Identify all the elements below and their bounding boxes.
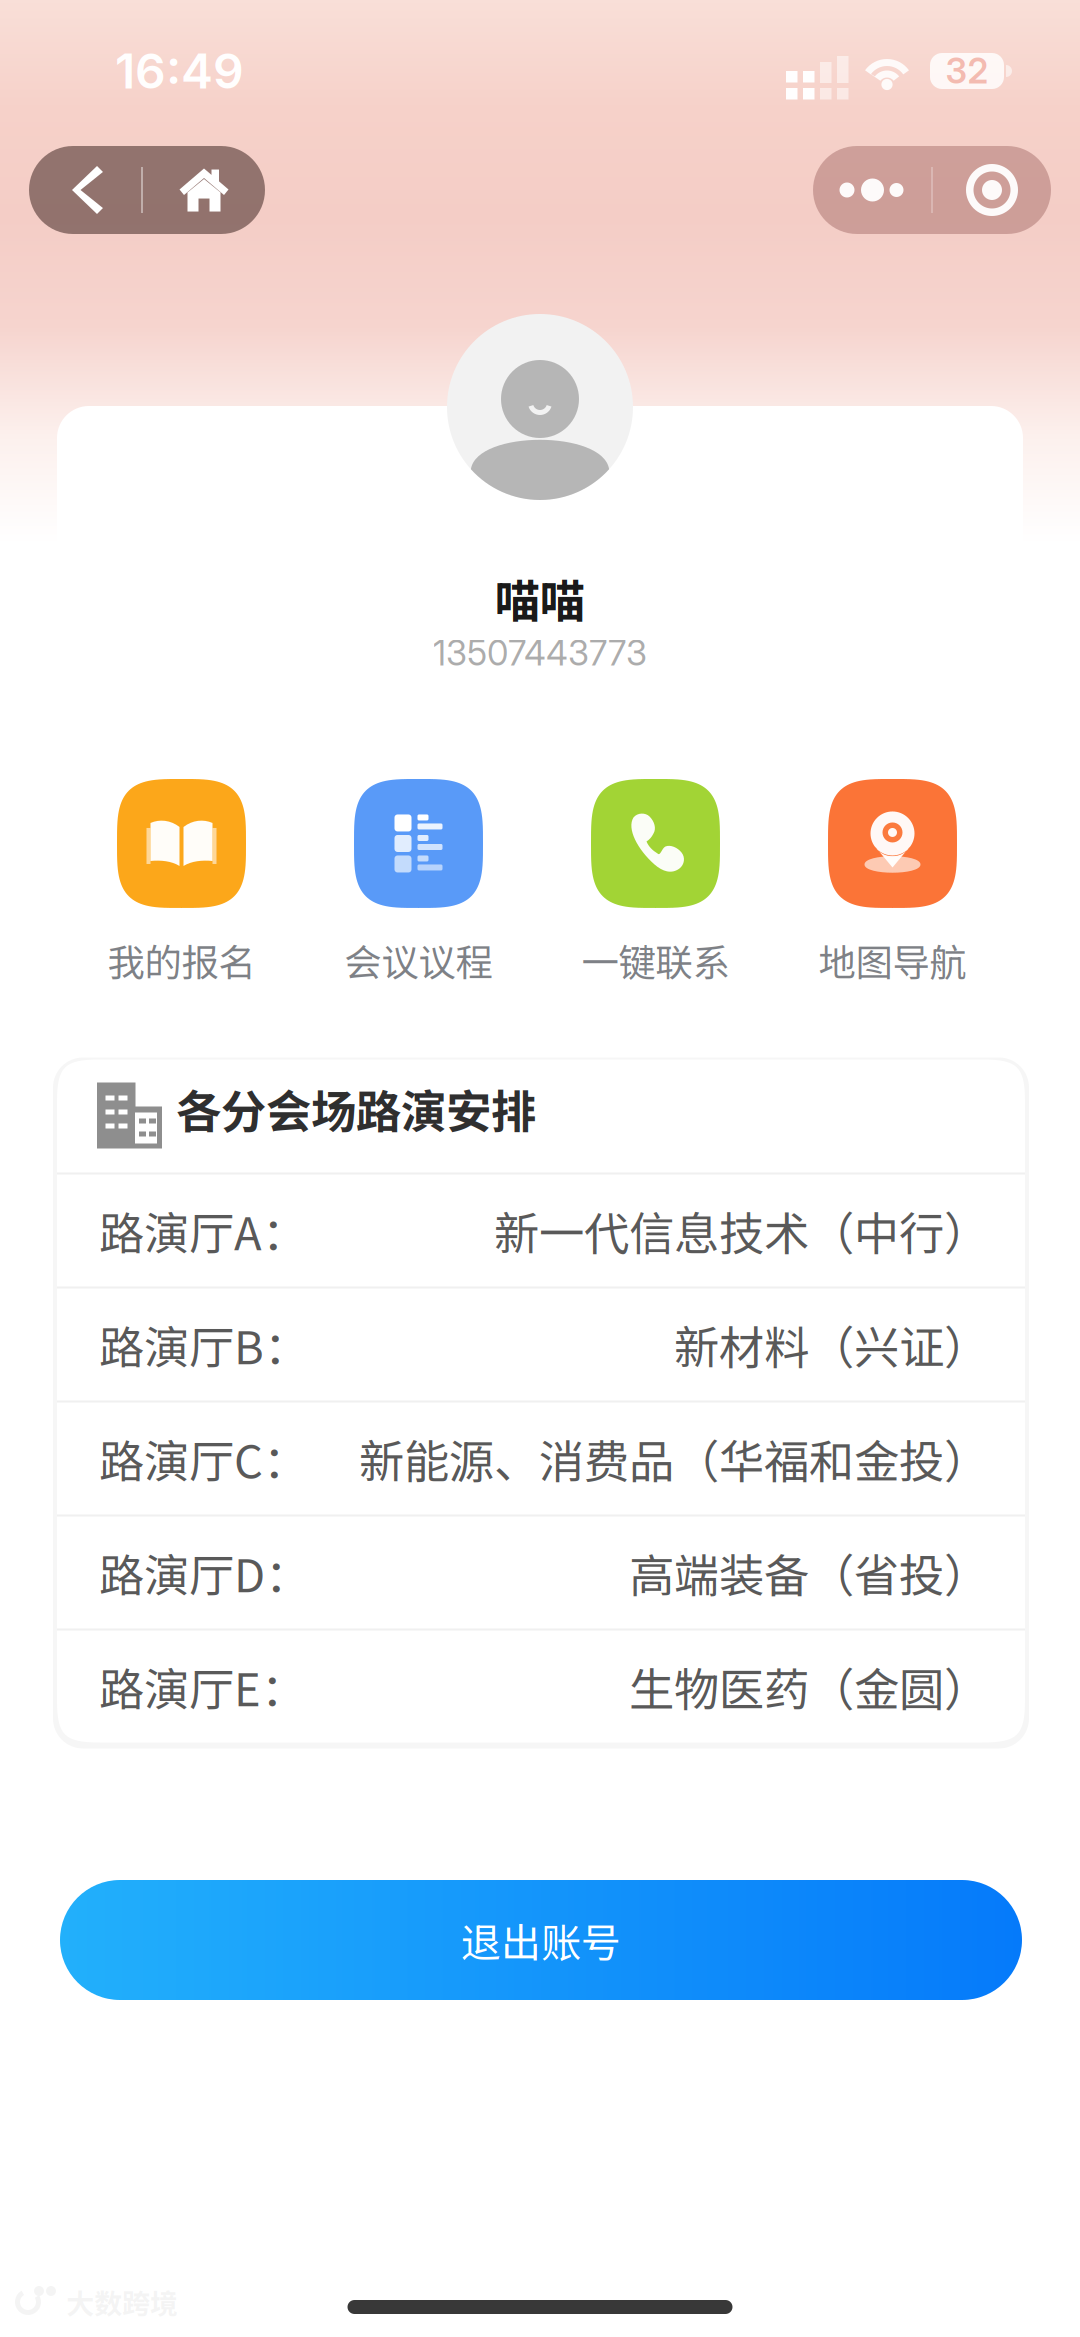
button[interactable]: 退出账号 [60,1880,1022,2000]
staticText: 一键联系 [581,933,729,987]
staticText: 地图导航 [818,933,966,987]
staticText: 高端装备（省投） [629,1540,989,1605]
staticText: 路演厅E： [99,1654,306,1719]
staticText: 会议议程 [344,933,492,987]
button[interactable]: More options [813,146,931,234]
staticText: 路演厅D： [99,1540,310,1605]
staticText: 路演厅A： [99,1198,307,1263]
button[interactable]: 会议议程 [330,784,506,982]
button[interactable]: 地图导航 [804,784,980,982]
button[interactable]: Home [143,146,265,234]
staticText: 路演厅B： [99,1312,309,1377]
staticText: 退出账号 [461,1911,621,1969]
staticText: 16:49 [115,42,244,100]
button[interactable]: 路演厅A： [57,1174,1025,1286]
button[interactable]: Close mini program [933,146,1051,234]
staticText: 路演厅C： [99,1426,308,1491]
staticText: 新能源、消费品（华福和金投） [359,1426,989,1491]
staticText: 大数跨境 [66,2282,178,2322]
staticText: 新材料（兴证） [674,1312,989,1377]
button[interactable]: Back [29,146,141,234]
button[interactable]: 路演厅E： [57,1630,1025,1742]
staticText: 32 [945,50,988,92]
button[interactable]: 我的报名 [93,784,269,982]
staticText: 13507443773 [433,632,647,674]
staticText: 各分会场路演安排 [176,1076,536,1141]
button[interactable]: 一键联系 [567,784,743,982]
button[interactable]: 路演厅C： [57,1402,1025,1514]
button[interactable]: 路演厅D： [57,1516,1025,1628]
staticText: 喵喵 [495,565,585,631]
button[interactable]: 路演厅B： [57,1288,1025,1400]
staticText: 我的报名 [107,933,255,987]
staticText: 新一代信息技术（中行） [494,1198,989,1263]
staticText: 生物医药（金圆） [629,1654,989,1719]
